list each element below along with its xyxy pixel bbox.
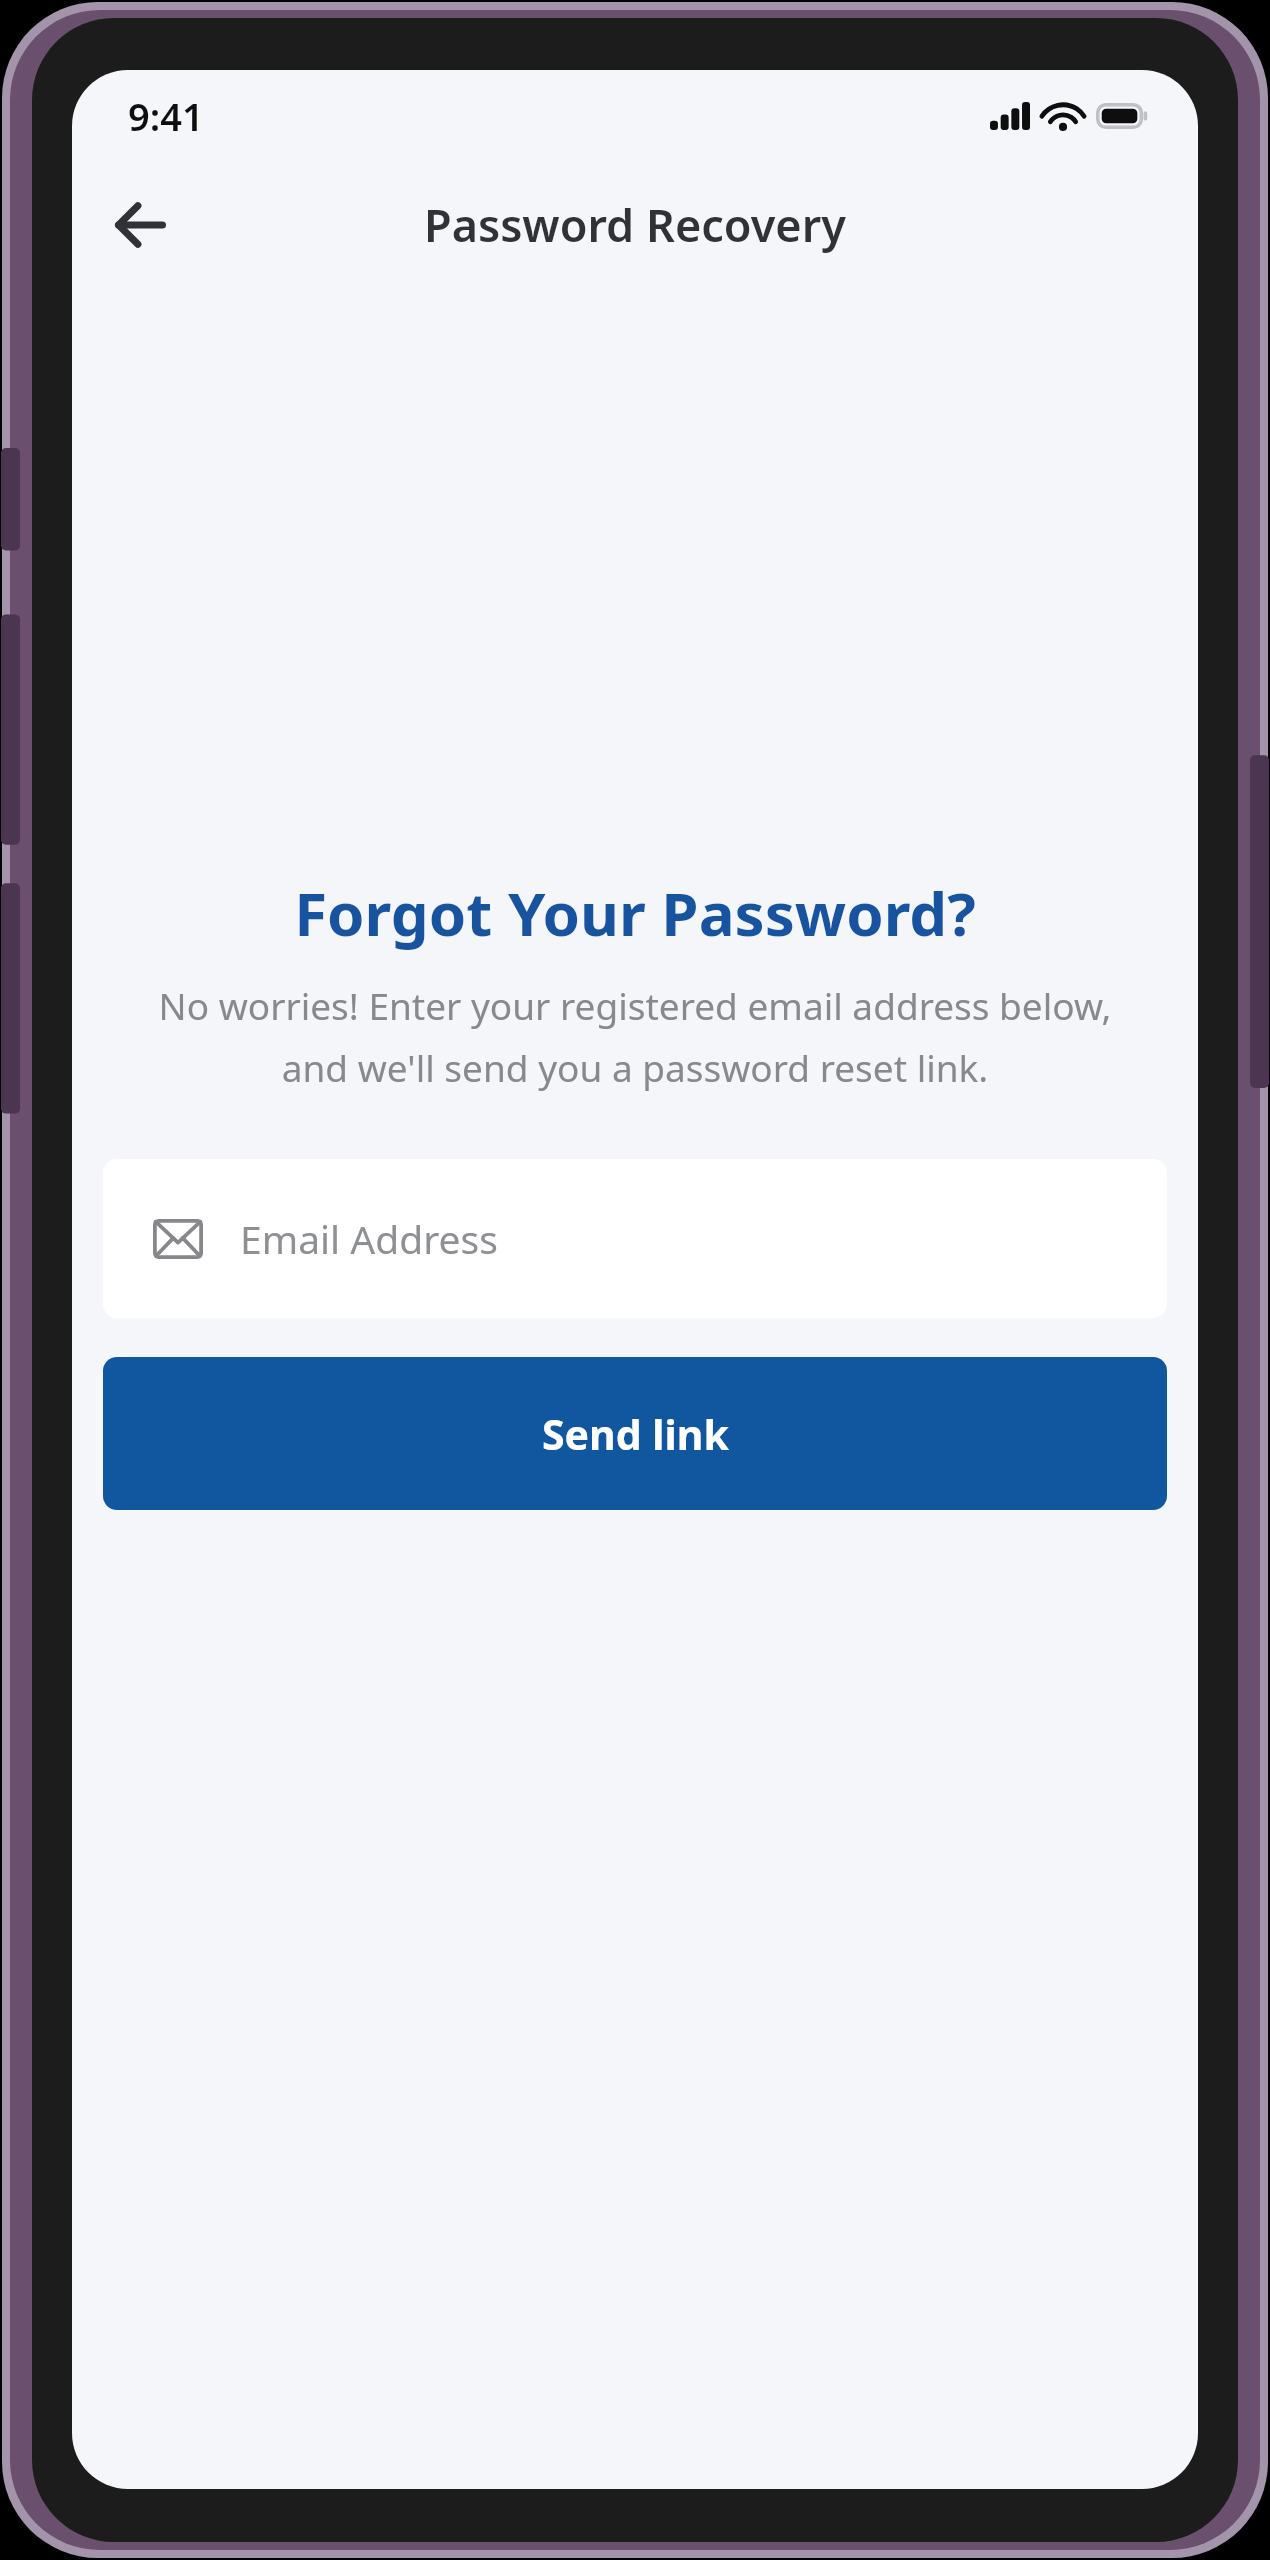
staticText: Send link (542, 1406, 729, 1462)
staticText: 9:41 (128, 90, 204, 142)
staticText: No worries! Enter your registered email … (126, 980, 1144, 1093)
button[interactable]: Email Address (103, 1159, 1167, 1318)
staticText: Forgot Your Password? (294, 872, 976, 954)
button[interactable]: Back (98, 183, 182, 267)
button[interactable]: Send link (103, 1357, 1167, 1510)
staticText: Email Address (240, 1212, 498, 1265)
staticText: Password Recovery (424, 194, 846, 255)
